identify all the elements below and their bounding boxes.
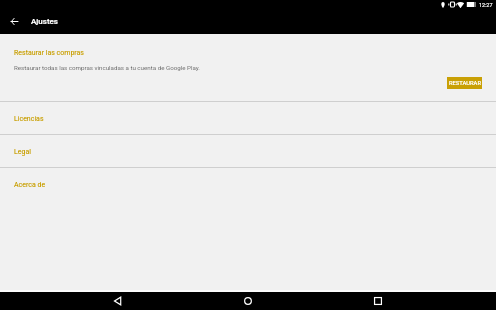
button[interactable]: Home	[233, 292, 263, 310]
staticText: Restaurar las compras	[14, 49, 84, 57]
staticText: Licencias	[14, 115, 44, 123]
staticText: Ajustes	[31, 17, 58, 26]
button[interactable]: Recent apps	[363, 292, 393, 310]
button[interactable]: Acerca de	[0, 168, 496, 200]
button[interactable]: RESTAURAR	[447, 77, 482, 89]
staticText: Acerca de	[14, 181, 46, 189]
button[interactable]: Back	[103, 292, 133, 310]
staticText: RESTAURAR	[449, 80, 481, 87]
button[interactable]: Restaurar las compras	[0, 34, 496, 101]
button[interactable]: Back	[4, 11, 24, 31]
staticText: 12:27	[479, 2, 493, 8]
staticText: Restaurar todas las compras vinculadas a…	[14, 64, 200, 71]
button[interactable]: Licencias	[0, 102, 496, 134]
staticText: Legal	[14, 148, 31, 156]
button[interactable]: Legal	[0, 135, 496, 167]
